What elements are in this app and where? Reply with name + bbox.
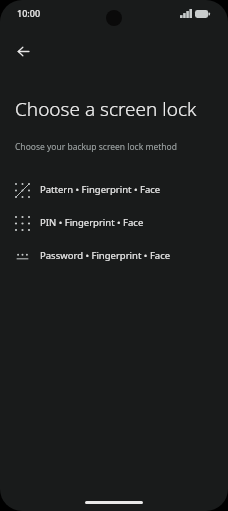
button[interactable]: Password • Fingerprint • Face [0,239,228,272]
button[interactable]: Back [6,34,40,68]
staticText: Pattern • Fingerprint • Face [40,183,161,196]
staticText: PIN • Fingerprint • Face [40,216,144,229]
button[interactable]: PIN • Fingerprint • Face [0,206,228,239]
staticText: Choose a screen lock [15,96,216,122]
staticText: Choose your backup screen lock method [15,141,216,153]
staticText: Password • Fingerprint • Face [40,249,171,262]
staticText: 10:00 [17,7,41,19]
button[interactable]: Pattern • Fingerprint • Face [0,173,228,206]
